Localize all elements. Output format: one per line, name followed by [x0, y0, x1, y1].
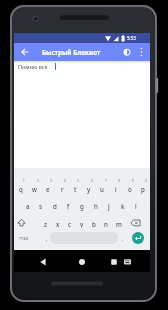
staticText: ?123 [19, 236, 29, 242]
button[interactable] [132, 232, 144, 244]
staticText: q [19, 185, 23, 193]
button[interactable]: 7 [99, 175, 113, 186]
button[interactable]: , [40, 234, 54, 245]
button[interactable]: 3 [44, 175, 58, 186]
button[interactable]: y [82, 183, 96, 194]
button[interactable]: o [123, 183, 137, 194]
staticText: m [116, 220, 122, 228]
staticText: c [68, 220, 72, 228]
button[interactable] [37, 256, 49, 268]
button[interactable] [120, 45, 134, 59]
staticText: s [39, 202, 43, 210]
button[interactable]: b [87, 218, 101, 229]
button[interactable]: u [95, 183, 109, 194]
button[interactable]: 2 [31, 175, 45, 186]
button[interactable] [108, 256, 120, 268]
staticText: p [141, 185, 145, 193]
button[interactable] [135, 45, 148, 59]
staticText: j [108, 202, 110, 210]
staticText: g [80, 202, 84, 210]
button[interactable]: j [102, 200, 116, 211]
button[interactable]: a [21, 200, 35, 211]
staticText: 2 [37, 179, 39, 183]
staticText: l [135, 202, 137, 210]
button[interactable]: 0 [139, 175, 153, 186]
button[interactable]: 9 [126, 175, 140, 186]
button[interactable]: n [99, 218, 113, 229]
button[interactable]: f [61, 200, 75, 211]
button[interactable]: 1 [17, 175, 31, 186]
staticText: h [94, 202, 98, 210]
staticText: 3 [50, 179, 52, 183]
button[interactable]: 8 [112, 175, 126, 186]
staticText: e [46, 185, 50, 193]
staticText: k [121, 202, 125, 210]
button[interactable] [15, 217, 28, 229]
staticText: r [61, 185, 64, 193]
staticText: , [46, 236, 48, 243]
button[interactable]: m [112, 218, 126, 229]
button[interactable]: t [68, 183, 82, 194]
staticText: 6 [91, 179, 93, 183]
button[interactable]: p [136, 183, 150, 194]
staticText: 9 [132, 179, 134, 183]
button[interactable] [129, 217, 142, 229]
button[interactable] [122, 257, 133, 267]
staticText: d [53, 202, 57, 210]
button[interactable]: 5 [71, 175, 85, 186]
button[interactable]: d [48, 200, 62, 211]
staticText: 5:53 [127, 35, 136, 41]
staticText: 0 [145, 179, 147, 183]
button[interactable]: w [27, 183, 41, 194]
staticText: 8 [118, 179, 120, 183]
staticText: u [100, 185, 104, 193]
button[interactable]: 6 [85, 175, 99, 186]
button[interactable] [76, 256, 88, 268]
staticText: a [26, 202, 30, 210]
button[interactable]: l [129, 200, 143, 211]
staticText: b [92, 220, 96, 228]
staticText: 1 [23, 179, 25, 183]
staticText: . [122, 236, 124, 243]
button[interactable]: c [63, 218, 77, 229]
button[interactable]: k [116, 200, 130, 211]
button[interactable]: . [116, 234, 130, 245]
staticText: i [115, 185, 117, 193]
button[interactable]: q [14, 183, 28, 194]
button[interactable]: 4 [58, 175, 72, 186]
button[interactable]: i [109, 183, 123, 194]
button[interactable] [18, 45, 32, 59]
staticText: y [87, 185, 91, 193]
staticText: w [32, 185, 37, 193]
button[interactable]: s [34, 200, 48, 211]
button[interactable]: g [75, 200, 89, 211]
staticText: v [80, 220, 84, 228]
staticText: 4 [64, 179, 66, 183]
staticText: Быстрый Блокнот [42, 48, 101, 57]
button[interactable]: e [41, 183, 55, 194]
staticText: 5 [77, 179, 79, 183]
button[interactable]: h [89, 200, 103, 211]
button[interactable]: z [38, 218, 52, 229]
staticText: z [44, 220, 47, 228]
button[interactable]: v [75, 218, 89, 229]
button[interactable]: r [55, 183, 69, 194]
staticText: x [56, 220, 60, 228]
staticText: 7 [105, 179, 107, 183]
staticText: Помню все [18, 63, 48, 70]
button[interactable]: x [51, 218, 65, 229]
button[interactable]: ?123 [17, 233, 31, 244]
staticText: n [104, 220, 108, 228]
button[interactable]: Помню все [14, 61, 150, 168]
staticText: o [128, 185, 132, 193]
staticText: t [74, 185, 77, 193]
staticText: f [67, 202, 70, 210]
